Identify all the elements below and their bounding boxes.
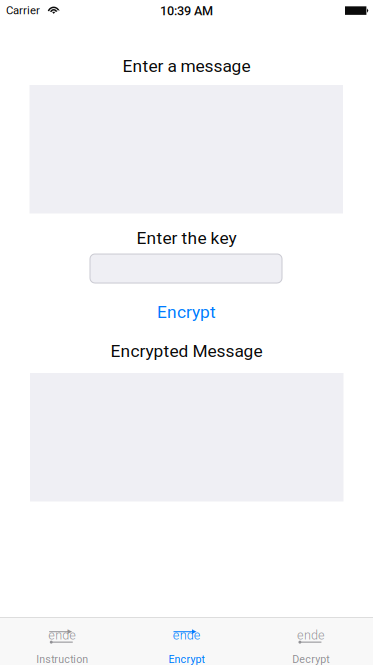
button[interactable]: ende — [0, 617, 124, 665]
staticText: Encrypt — [168, 653, 204, 665]
button[interactable]: ende — [124, 617, 249, 665]
staticText: Encrypted Message — [110, 341, 262, 361]
staticText: Enter a message — [122, 56, 250, 76]
staticText: ende — [173, 628, 201, 643]
staticText: Enter the key — [136, 228, 236, 248]
staticText: ende — [297, 628, 325, 643]
staticText: Instruction — [36, 653, 88, 665]
button[interactable]: Encrypt — [0, 300, 373, 324]
button[interactable]: ende — [249, 617, 373, 665]
staticText: Carrier — [6, 4, 40, 17]
staticText: Encrypt — [157, 302, 216, 322]
staticText: 10:39 AM — [160, 4, 213, 18]
staticText: ende — [48, 628, 76, 643]
staticText: Decrypt — [292, 653, 329, 665]
